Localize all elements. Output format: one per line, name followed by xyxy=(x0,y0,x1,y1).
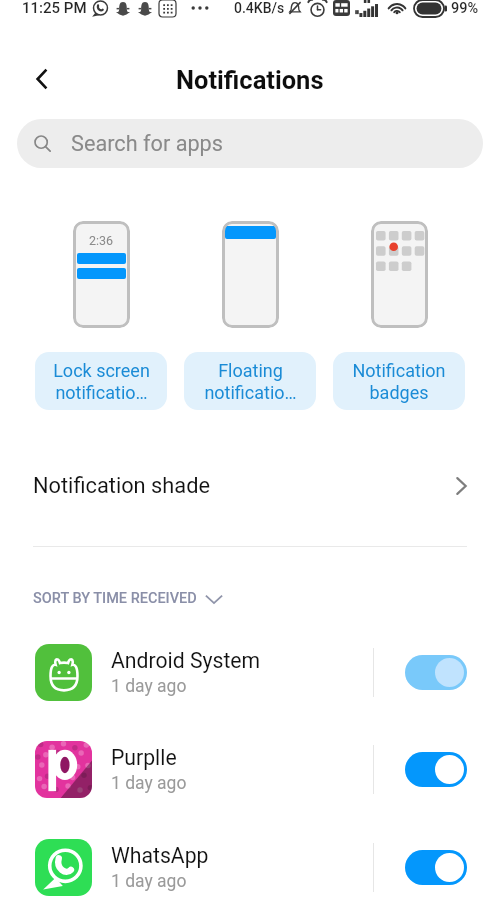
staticText: Lock screen notificatio… xyxy=(53,360,150,404)
staticText: 1 day ago xyxy=(111,773,187,794)
button[interactable]: Notification shade xyxy=(0,462,500,510)
staticText: 0.4KB/s xyxy=(234,0,285,16)
staticText: SORT BY TIME RECEIVED xyxy=(33,590,197,607)
staticText: WhatsApp xyxy=(111,843,209,868)
staticText: Notification badges xyxy=(352,360,446,404)
staticText: 1 day ago xyxy=(111,676,187,697)
staticText: 1 day ago xyxy=(111,871,187,892)
button[interactable]: Notification badges xyxy=(333,352,465,410)
button[interactable]: Toggle notifications xyxy=(405,752,467,787)
button[interactable]: Search for apps xyxy=(17,119,483,168)
staticText: Floating notificatio… xyxy=(204,360,297,404)
button[interactable]: Toggle notifications xyxy=(405,850,467,885)
staticText: Purplle xyxy=(111,745,177,770)
staticText: Search for apps xyxy=(71,131,223,156)
button[interactable]: Purplle xyxy=(0,720,500,818)
staticText: Android System xyxy=(111,648,261,673)
button[interactable]: Floating notificatio… xyxy=(184,352,316,410)
button[interactable]: Toggle notifications xyxy=(405,655,467,690)
button[interactable]: Back xyxy=(20,57,64,101)
button[interactable]: Android System xyxy=(0,623,500,721)
staticText: 2:36 xyxy=(89,233,114,248)
staticText: 99% xyxy=(451,0,479,17)
button[interactable]: Lock screen notificatio… xyxy=(35,352,167,410)
staticText: 11:25 PM xyxy=(22,0,87,17)
staticText: Notifications xyxy=(176,65,324,95)
staticText: Notification shade xyxy=(33,473,211,499)
button[interactable]: SORT BY TIME RECEIVED xyxy=(33,590,223,607)
button[interactable]: WhatsApp xyxy=(0,818,500,914)
